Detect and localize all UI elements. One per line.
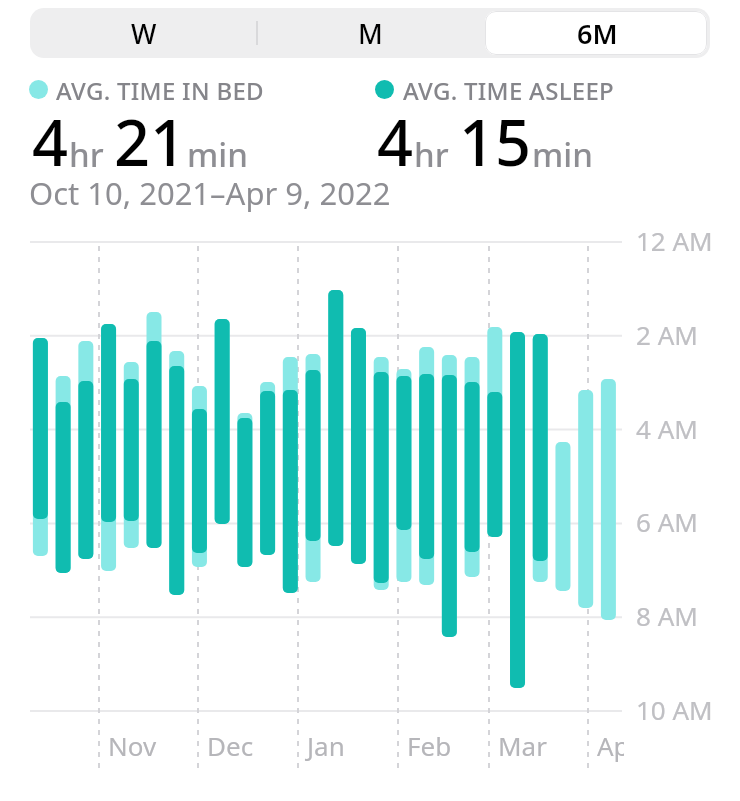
staticText: min	[532, 132, 593, 177]
staticText: 10 AM	[636, 692, 713, 727]
staticText: 4	[32, 99, 69, 185]
staticText: Jan	[307, 728, 345, 763]
staticText: W	[131, 15, 157, 52]
staticText: Apr	[597, 728, 624, 763]
staticText: hr	[69, 132, 104, 177]
staticText: Dec	[207, 728, 254, 763]
button[interactable]: M	[257, 8, 484, 58]
staticText: AVG. TIME ASLEEP	[403, 74, 615, 107]
staticText: 15	[459, 99, 532, 185]
staticText: hr	[414, 132, 449, 177]
staticText: Oct 10, 2021–Apr 9, 2022	[29, 172, 391, 214]
staticText: 4 AM	[636, 411, 698, 446]
staticText: AVG. TIME IN BED	[56, 74, 264, 107]
staticText: 12 AM	[636, 223, 713, 258]
staticText: 4	[377, 99, 414, 185]
staticText: Mar	[498, 728, 547, 763]
staticText: Feb	[407, 728, 452, 763]
staticText: Nov	[108, 728, 157, 763]
button[interactable]: 6M	[484, 8, 710, 58]
staticText: min	[187, 132, 248, 177]
staticText: M	[358, 15, 383, 52]
staticText: 21	[114, 99, 187, 185]
staticText: 6M	[577, 15, 618, 52]
button[interactable]: W	[30, 8, 257, 58]
staticText: 2 AM	[636, 317, 698, 352]
staticText: 8 AM	[636, 598, 698, 633]
staticText: 6 AM	[636, 504, 698, 539]
